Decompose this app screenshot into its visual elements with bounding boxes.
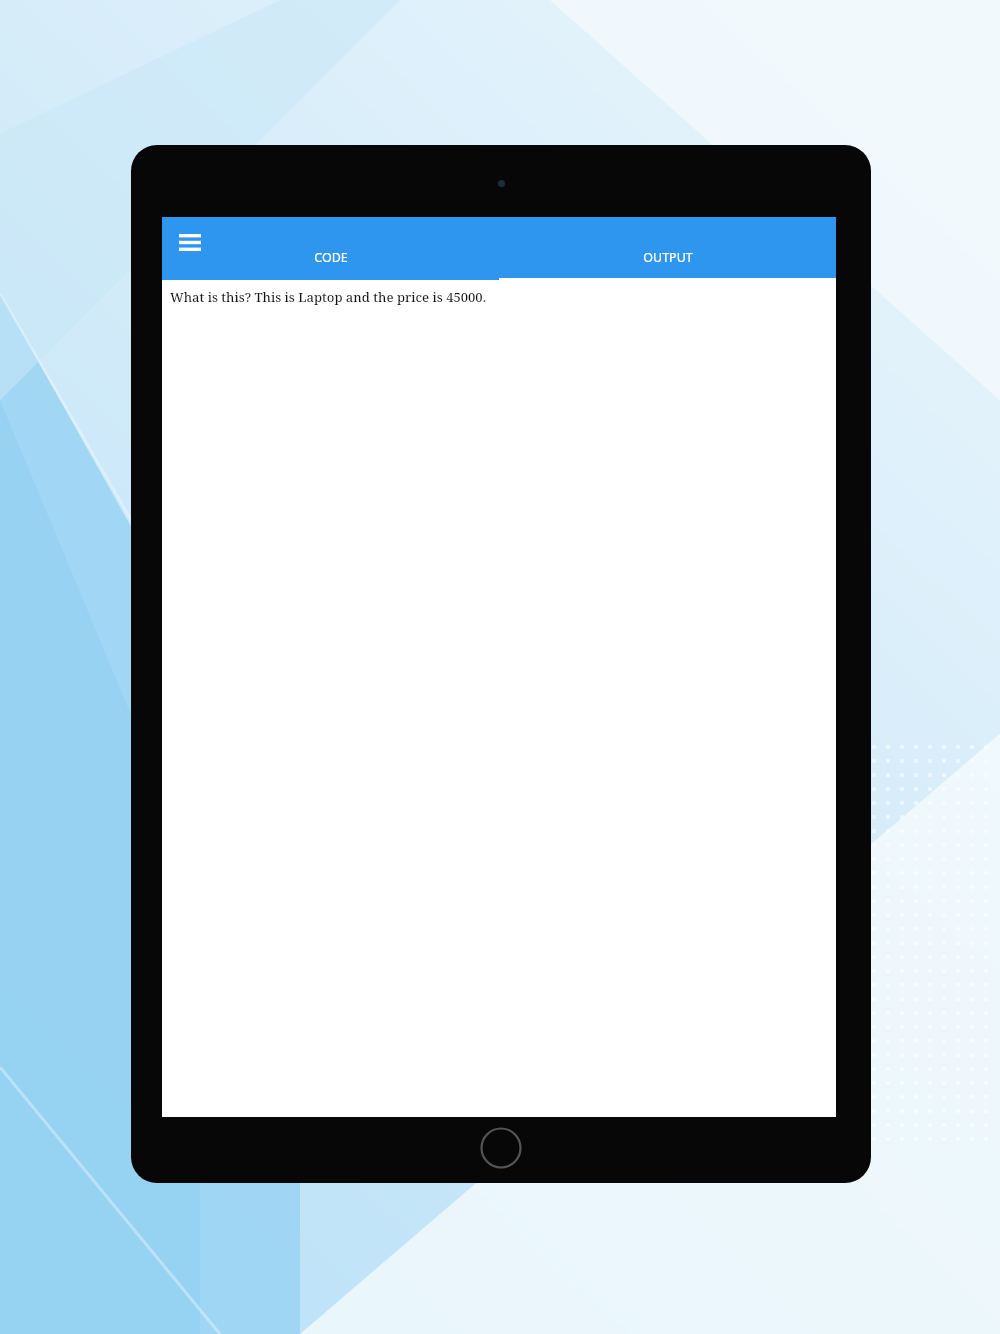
staticText: OUTPUT [643,249,693,266]
button[interactable]: CODE [162,246,499,280]
button[interactable]: OUTPUT [499,246,836,280]
staticText: CODE [314,249,348,266]
staticText: What is this? This is Laptop and the pri… [170,288,487,306]
button[interactable]: Open navigation menu [168,220,212,264]
